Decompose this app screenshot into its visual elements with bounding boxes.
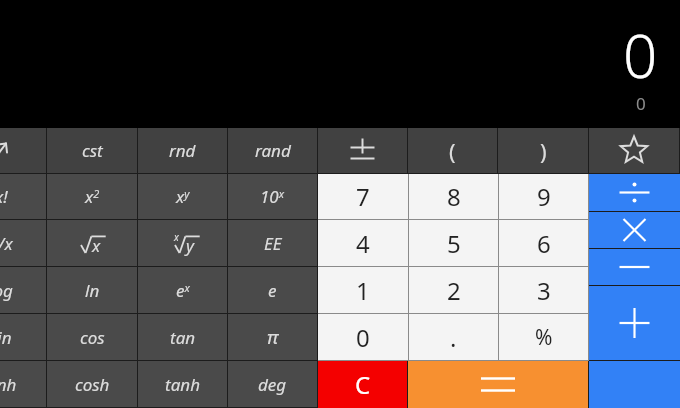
button[interactable]: cos: [47, 314, 137, 360]
staticText: 1/x: [0, 232, 13, 255]
button[interactable]: rand: [228, 128, 317, 173]
staticText: 9: [537, 180, 551, 213]
button[interactable]: Favorites: [589, 128, 679, 173]
staticText: EE: [264, 232, 282, 255]
button[interactable]: (: [408, 128, 497, 173]
button[interactable]: 9: [499, 174, 588, 219]
button[interactable]: ): [498, 128, 588, 173]
staticText: 3: [537, 274, 551, 307]
button[interactable]: 4: [318, 220, 408, 266]
button[interactable]: ln: [47, 267, 137, 313]
button[interactable]: 0: [318, 314, 408, 360]
button[interactable]: tan: [138, 314, 227, 360]
staticText: cos: [80, 326, 105, 349]
button[interactable]: xy: [138, 174, 227, 219]
button[interactable]: 10x: [228, 174, 317, 219]
staticText: sin: [0, 326, 12, 349]
staticText: 10x: [260, 185, 285, 208]
button[interactable]: Equals: [408, 361, 588, 408]
staticText: .: [450, 321, 457, 354]
staticText: x: [92, 234, 101, 257]
button[interactable]: 1/x: [0, 220, 46, 266]
button[interactable]: Add: [589, 286, 680, 360]
button[interactable]: cst: [47, 128, 137, 173]
button[interactable]: e: [228, 267, 317, 313]
button[interactable]: 2: [409, 267, 498, 313]
button[interactable]: .: [409, 314, 498, 360]
button[interactable]: 1: [318, 267, 408, 313]
button[interactable]: sin: [0, 314, 46, 360]
button[interactable]: cosh: [47, 361, 137, 407]
button[interactable]: x: [138, 220, 227, 266]
staticText: %: [535, 323, 553, 352]
staticText: rand: [255, 139, 291, 162]
button[interactable]: [318, 128, 407, 173]
staticText: 2: [447, 274, 461, 307]
staticText: 8: [447, 180, 461, 213]
staticText: x!: [0, 185, 8, 208]
staticText: tan: [170, 326, 196, 349]
button[interactable]: log: [0, 267, 46, 313]
staticText: e: [268, 279, 277, 302]
staticText: y: [186, 234, 194, 257]
staticText: tanh: [165, 373, 200, 396]
button[interactable]: π: [228, 314, 317, 360]
button[interactable]: C: [318, 361, 407, 408]
staticText: deg: [258, 373, 287, 396]
staticText: cst: [82, 139, 103, 162]
button[interactable]: x2: [47, 174, 137, 219]
button[interactable]: 8: [409, 174, 498, 219]
staticText: π: [267, 324, 279, 350]
staticText: ): [540, 136, 547, 166]
staticText: log: [0, 279, 13, 302]
button[interactable]: ex: [138, 267, 227, 313]
staticText: ln: [85, 279, 100, 302]
staticText: 0: [636, 92, 646, 115]
button[interactable]: 7: [318, 174, 408, 219]
staticText: x2: [85, 185, 100, 208]
staticText: 0: [356, 321, 370, 354]
button[interactable]: 3: [499, 267, 588, 313]
button[interactable]: Multiply: [589, 212, 680, 248]
staticText: 6: [537, 227, 551, 260]
button[interactable]: Subtract: [589, 249, 680, 285]
staticText: rnd: [169, 139, 196, 162]
staticText: xy: [176, 185, 190, 208]
staticText: 5: [447, 227, 461, 260]
staticText: (: [449, 136, 456, 166]
staticText: x: [174, 230, 179, 244]
staticText: ex: [176, 279, 190, 302]
staticText: sinh: [0, 373, 17, 396]
staticText: C: [355, 368, 371, 401]
button[interactable]: [0, 128, 46, 173]
button[interactable]: %: [499, 314, 588, 360]
staticText: 0: [623, 14, 658, 96]
button[interactable]: x!: [0, 174, 46, 219]
button[interactable]: tanh: [138, 361, 227, 407]
button[interactable]: 5: [409, 220, 498, 266]
button[interactable]: x: [47, 220, 137, 266]
button[interactable]: deg: [228, 361, 317, 407]
staticText: 7: [356, 180, 370, 213]
staticText: 1: [356, 274, 370, 307]
button[interactable]: sinh: [0, 361, 46, 407]
button[interactable]: EE: [228, 220, 317, 266]
button[interactable]: 6: [499, 220, 588, 266]
button[interactable]: rnd: [138, 128, 227, 173]
staticText: cosh: [75, 373, 110, 396]
button[interactable]: Divide: [589, 174, 680, 211]
staticText: 4: [356, 227, 370, 260]
